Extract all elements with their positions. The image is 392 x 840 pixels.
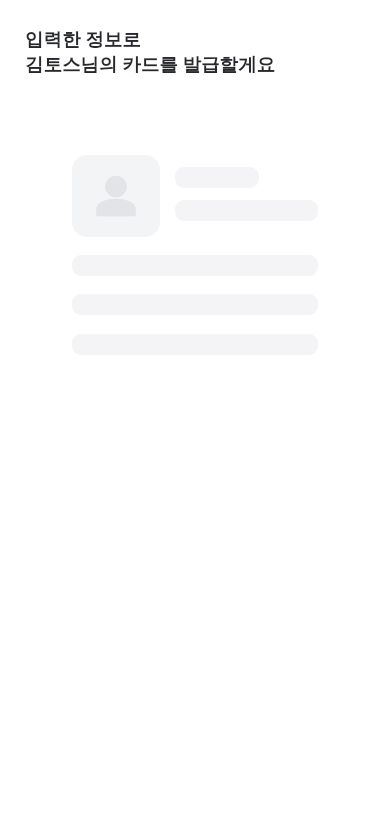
staticText: 김토스님의 카드를 발급할게요	[25, 51, 276, 76]
button[interactable]: Profile photo placeholder	[72, 155, 160, 237]
staticText: 입력한 정보로	[25, 26, 141, 51]
